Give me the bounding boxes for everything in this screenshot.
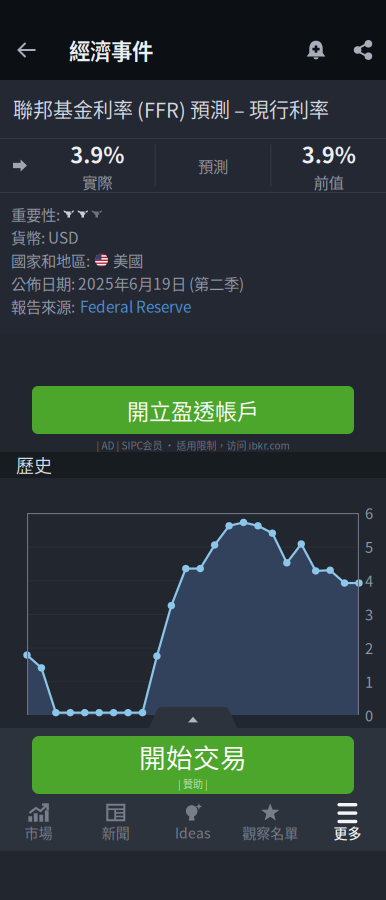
staticText: 2 bbox=[365, 637, 373, 658]
staticText: | 贊助 | bbox=[178, 776, 208, 791]
staticText: 歷史 bbox=[16, 452, 52, 478]
staticText: | AD | SIPC会员 • 适用限制，访问 ibkr.com bbox=[96, 438, 289, 452]
staticText: 經濟事件 bbox=[69, 35, 153, 65]
button[interactable]: 市場 bbox=[0, 795, 77, 850]
staticText: 實際 bbox=[82, 171, 112, 193]
staticText: 重要性: bbox=[11, 203, 60, 225]
staticText: 開始交易 bbox=[139, 737, 247, 776]
button[interactable]: 觀察名單 bbox=[232, 795, 309, 850]
button[interactable]: Ideas bbox=[154, 795, 232, 850]
staticText: 市場 bbox=[25, 822, 53, 843]
staticText: 貨幣: USD bbox=[11, 226, 79, 248]
staticText: Federal Reserve bbox=[80, 295, 191, 317]
staticText: 觀察名單 bbox=[242, 822, 298, 843]
staticText: 美國 bbox=[113, 249, 143, 271]
staticText: 0 bbox=[365, 704, 373, 726]
button[interactable]: 開始交易 bbox=[32, 736, 354, 794]
staticText: 報告來源: bbox=[11, 295, 75, 317]
staticText: Ideas bbox=[175, 822, 211, 843]
button[interactable]: 新聞 bbox=[77, 795, 154, 850]
staticText: 1 bbox=[365, 671, 373, 692]
staticText: 預測 bbox=[198, 154, 228, 177]
staticText: 更多 bbox=[333, 822, 361, 843]
staticText: 公佈日期: 2025年6月19日 (第二季) bbox=[11, 272, 244, 294]
button[interactable]: Share bbox=[340, 27, 386, 73]
button[interactable]: Add alert bbox=[292, 27, 340, 73]
staticText: 6 bbox=[365, 502, 373, 523]
staticText: 3 bbox=[365, 603, 373, 625]
staticText: 聯邦基金利率 (FFR) 預測 – 現行利率 bbox=[13, 94, 329, 123]
button[interactable]: 開立盈透帳戶 bbox=[32, 386, 354, 434]
button[interactable]: Back bbox=[0, 27, 54, 73]
staticText: 5 bbox=[365, 536, 373, 557]
staticText: 新聞 bbox=[102, 822, 130, 843]
staticText: 國家和地區: bbox=[11, 249, 90, 271]
staticText: 4 bbox=[365, 570, 373, 591]
staticText: 3.9% bbox=[70, 138, 124, 170]
staticText: 開立盈透帳戶 bbox=[127, 394, 259, 426]
staticText: 3.9% bbox=[302, 138, 356, 170]
button[interactable]: Federal Reserve bbox=[80, 295, 191, 317]
staticText: 前值 bbox=[314, 171, 344, 193]
button[interactable]: 更多 bbox=[309, 795, 386, 850]
